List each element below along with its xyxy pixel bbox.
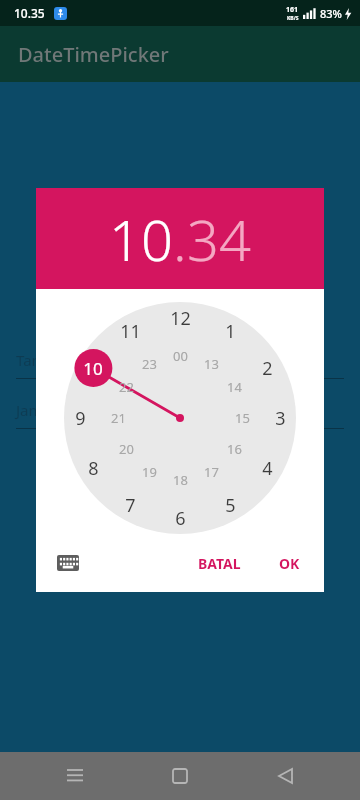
staticText: OK (279, 554, 300, 573)
staticText: 1 (225, 319, 236, 344)
staticText: 22 (119, 378, 134, 396)
staticText: 7 (125, 493, 136, 518)
button[interactable]: Home (150, 752, 210, 800)
button[interactable]: 34 (187, 201, 251, 277)
staticText: . (173, 201, 187, 277)
staticText: 17 (204, 463, 219, 481)
staticText: 14 (227, 378, 242, 396)
staticText: 23 (142, 355, 157, 373)
button[interactable]: Switch to text input (48, 543, 88, 583)
staticText: 4 (262, 456, 273, 481)
staticText: Tanggal (16, 350, 72, 370)
staticText: 19 (142, 463, 157, 481)
staticText: 18 (173, 471, 188, 489)
staticText: BATAL (198, 554, 241, 573)
staticText: 161 (286, 5, 299, 15)
button[interactable]: OK (267, 546, 312, 581)
button[interactable]: Recents (45, 752, 105, 800)
staticText: 16 (227, 440, 242, 458)
staticText: Jam (16, 400, 43, 420)
staticText: 8 (88, 456, 99, 481)
button[interactable]: BATAL (186, 546, 253, 581)
staticText: 13 (204, 355, 219, 373)
staticText: 6 (175, 506, 186, 531)
staticText: 11 (120, 319, 141, 344)
staticText: 5 (225, 493, 236, 518)
staticText: KB/S (287, 15, 299, 22)
staticText: 00 (173, 347, 188, 365)
staticText: 20 (119, 440, 134, 458)
button[interactable]: 10 (109, 201, 173, 277)
staticText: DateTimePicker (18, 41, 169, 68)
button[interactable]: Back (255, 752, 315, 800)
staticText: 10 (83, 357, 103, 380)
staticText: 21 (111, 409, 126, 427)
staticText: 83% (320, 6, 342, 21)
staticText: 2 (262, 356, 273, 381)
staticText: 3 (275, 406, 286, 431)
staticText: 10.35 (14, 5, 45, 21)
staticText: 9 (75, 406, 86, 431)
staticText: 12 (170, 306, 191, 331)
staticText: 15 (235, 409, 250, 427)
